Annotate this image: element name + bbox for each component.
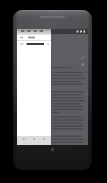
button[interactable] [17, 41, 51, 47]
button[interactable] [17, 35, 51, 40]
